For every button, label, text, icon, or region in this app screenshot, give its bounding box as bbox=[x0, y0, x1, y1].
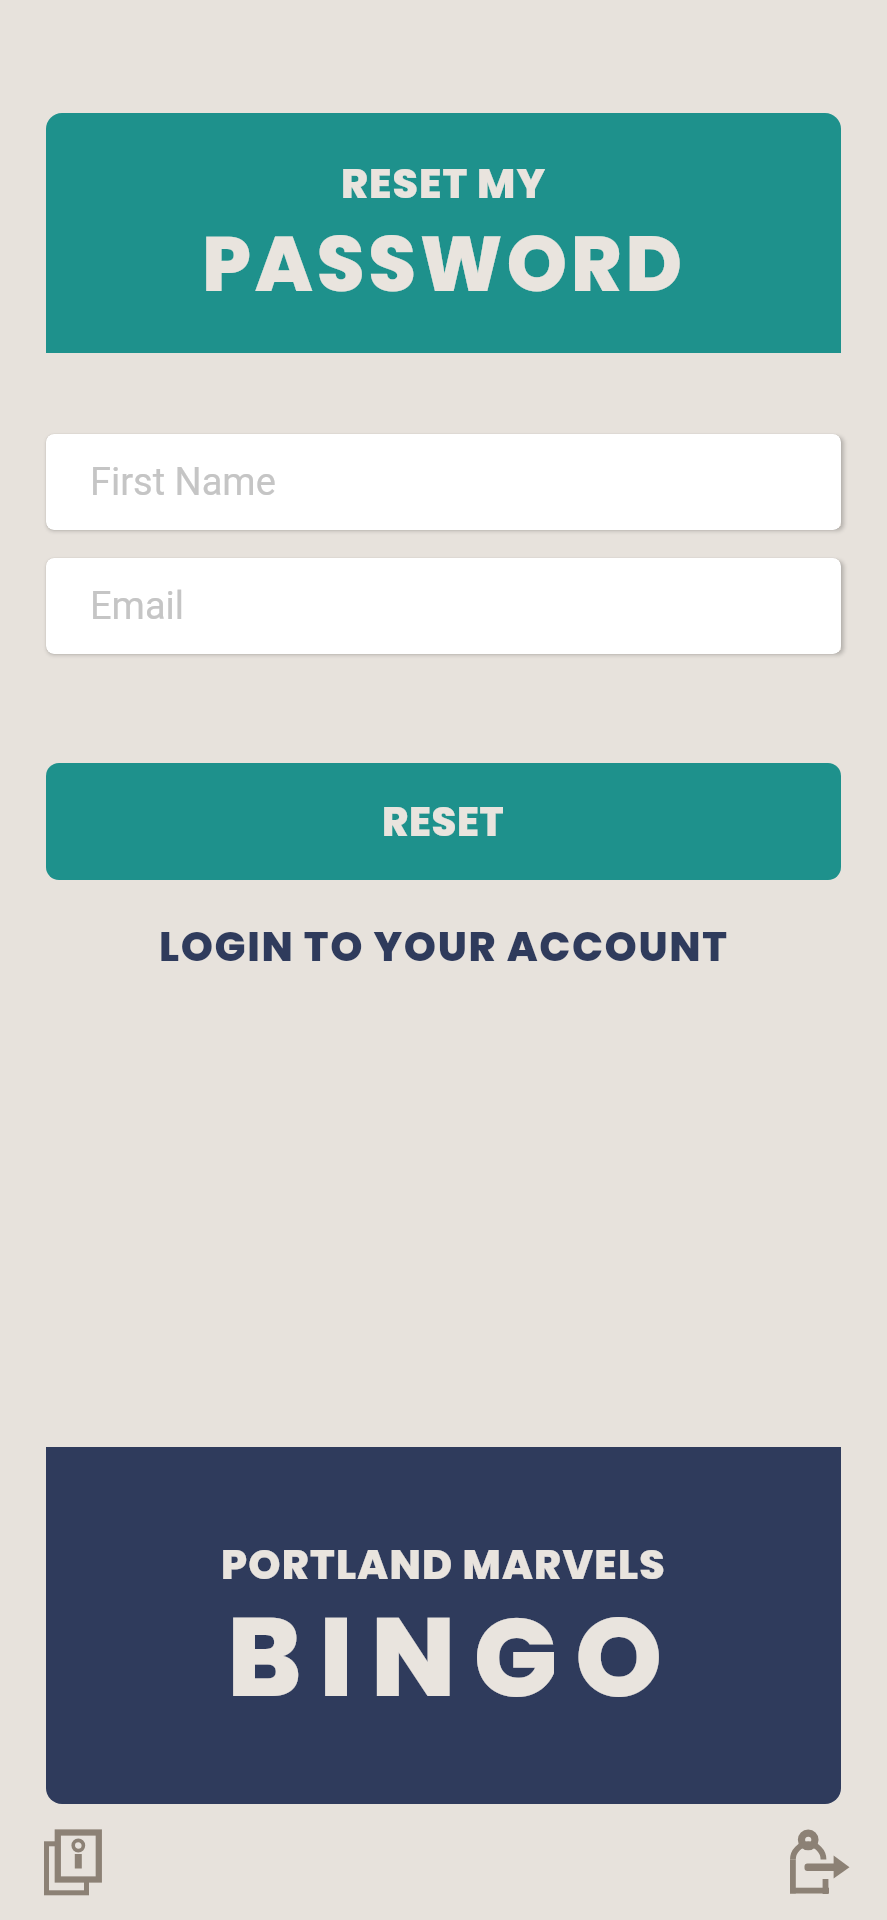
button[interactable]: About bbox=[36, 1826, 108, 1898]
button[interactable]: First Name bbox=[46, 434, 841, 530]
button[interactable]: LOGIN TO YOUR ACCOUNT bbox=[0, 911, 887, 981]
staticText: RESET MY bbox=[341, 155, 547, 212]
staticText: RESET bbox=[382, 794, 505, 850]
staticText: First Name bbox=[90, 460, 276, 505]
button[interactable]: Sign out bbox=[784, 1826, 856, 1898]
staticText: LOGIN TO YOUR ACCOUNT bbox=[159, 918, 729, 975]
staticText: PASSWORD bbox=[202, 210, 686, 318]
staticText: BINGO bbox=[227, 1579, 680, 1734]
staticText: Email bbox=[90, 584, 185, 629]
button[interactable]: RESET bbox=[46, 763, 841, 880]
staticText: PORTLAND MARVELS bbox=[221, 1536, 666, 1593]
button[interactable]: Email bbox=[46, 558, 841, 654]
